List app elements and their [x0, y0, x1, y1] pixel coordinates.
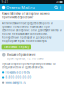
staticText: Какие таблетки от аллергии можно принима…: [2, 12, 50, 19]
button[interactable]: 8-800-000-00-00: [0, 74, 64, 79]
button[interactable]: More: [59, 4, 63, 11]
staticText: 8-800-000-00-00: [5, 76, 31, 79]
staticText: Ответы Mail.ru: [6, 5, 34, 10]
staticText: Записаться к врачу: [4, 45, 29, 49]
button[interactable]: Записаться к врачу: [2, 44, 31, 49]
button[interactable]: Search: [54, 4, 59, 11]
staticText: Антигистаминные средства второго и треть…: [2, 21, 62, 43]
staticText: Высшее образование: [7, 53, 35, 56]
button[interactable]: Menu: [1, 4, 6, 11]
staticText: Показать все ответы: [5, 71, 30, 74]
staticText: 9:41: [1, 0, 8, 4]
staticText: LTE: [55, 0, 58, 4]
staticText: www.example.ru: [5, 81, 26, 84]
button[interactable]: www.example.ru: [0, 79, 64, 84]
staticText: Лучше сперва проконсультироваться со спе…: [2, 62, 56, 69]
button[interactable]: Показать все ответы: [0, 69, 64, 74]
staticText: Врач-терапевт, 12 лет стажа: [7, 57, 43, 60]
